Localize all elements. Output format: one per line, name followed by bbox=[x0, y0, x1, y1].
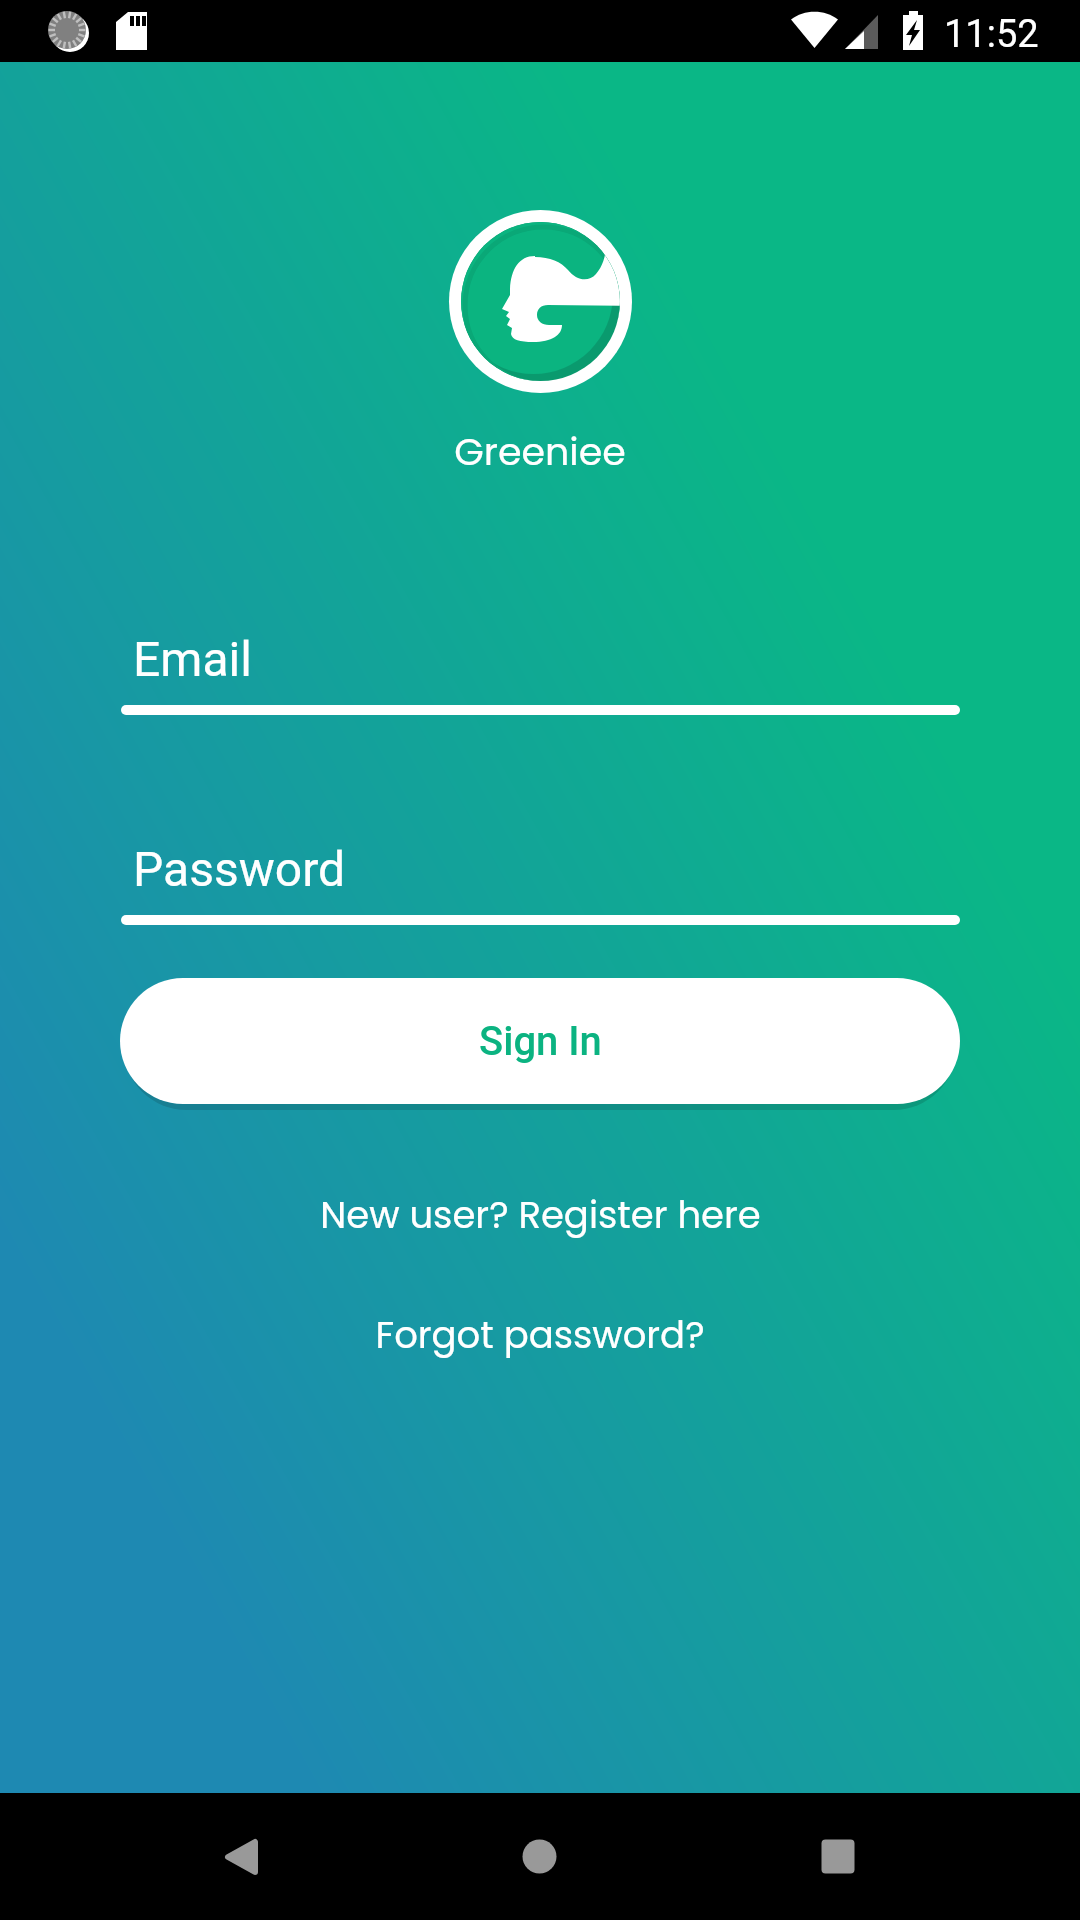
staticText: 11:52 bbox=[944, 12, 1039, 57]
button[interactable]: Password bbox=[0, 827, 1080, 925]
staticText: Sign In bbox=[479, 1018, 602, 1065]
staticText: Password bbox=[133, 841, 346, 897]
button[interactable]: Recent apps bbox=[720, 1793, 900, 1920]
staticText: New user? Register here bbox=[320, 1189, 761, 1241]
staticText: Forgot password? bbox=[375, 1309, 705, 1361]
button[interactable]: Email bbox=[0, 617, 1080, 715]
staticText: Greeniee bbox=[454, 425, 626, 478]
button[interactable]: New user? Register here bbox=[306, 1183, 775, 1247]
staticText: Email bbox=[133, 631, 252, 687]
button[interactable]: Back bbox=[151, 1793, 331, 1920]
button[interactable]: Forgot password? bbox=[361, 1303, 719, 1367]
button[interactable]: Home bbox=[450, 1793, 630, 1920]
button[interactable]: Sign In bbox=[120, 978, 960, 1104]
